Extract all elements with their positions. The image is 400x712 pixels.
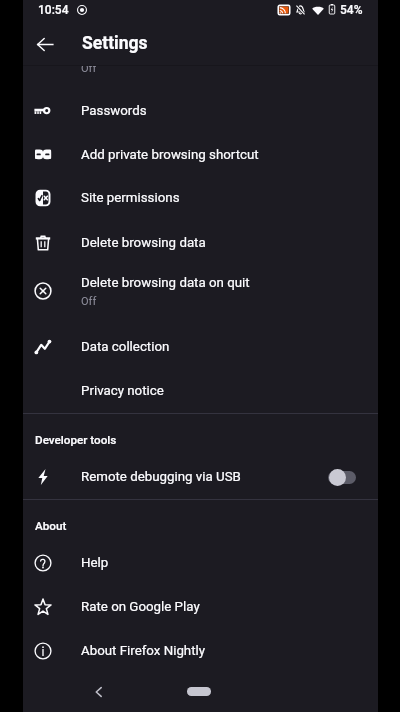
staticText: Passwords xyxy=(81,103,147,119)
button[interactable]: Delete browsing data xyxy=(23,221,378,265)
staticText: Data collection xyxy=(81,339,170,355)
staticText: Off xyxy=(81,295,97,308)
staticText: Help xyxy=(81,555,109,571)
button[interactable]: About Firefox Nightly xyxy=(23,629,378,673)
staticText: About xyxy=(35,519,67,533)
button[interactable]: Remote debugging via USB xyxy=(23,455,378,499)
button[interactable]: Passwords xyxy=(23,89,378,133)
staticText: Site permissions xyxy=(81,190,180,206)
staticText: Privacy notice xyxy=(81,383,164,399)
button[interactable]: Help xyxy=(23,541,378,585)
button[interactable]: Back xyxy=(86,680,110,704)
button[interactable]: Remote debugging via USB toggle xyxy=(319,457,359,497)
button[interactable]: Site permissions xyxy=(23,176,378,220)
staticText: Add private browsing shortcut xyxy=(81,147,259,163)
staticText: Delete browsing data on quit xyxy=(81,275,250,291)
staticText: 10:54 xyxy=(38,3,69,17)
button[interactable]: Home xyxy=(187,687,211,696)
staticText: Remote debugging via USB xyxy=(81,469,241,485)
staticText: Settings xyxy=(82,33,148,54)
button[interactable]: Data collection xyxy=(23,325,378,369)
staticText: Developer tools xyxy=(35,433,117,447)
button[interactable]: Add private browsing shortcut xyxy=(23,133,378,177)
button[interactable]: Rate on Google Play xyxy=(23,585,378,629)
button[interactable]: Privacy notice xyxy=(23,369,378,413)
staticText: Rate on Google Play xyxy=(81,599,200,615)
staticText: Off xyxy=(81,65,97,75)
button[interactable]: Navigate up xyxy=(27,26,63,62)
staticText: 54% xyxy=(340,3,363,17)
staticText: About Firefox Nightly xyxy=(81,643,206,659)
staticText: Delete browsing data xyxy=(81,235,206,251)
button[interactable]: Delete browsing data on quit xyxy=(23,265,378,317)
